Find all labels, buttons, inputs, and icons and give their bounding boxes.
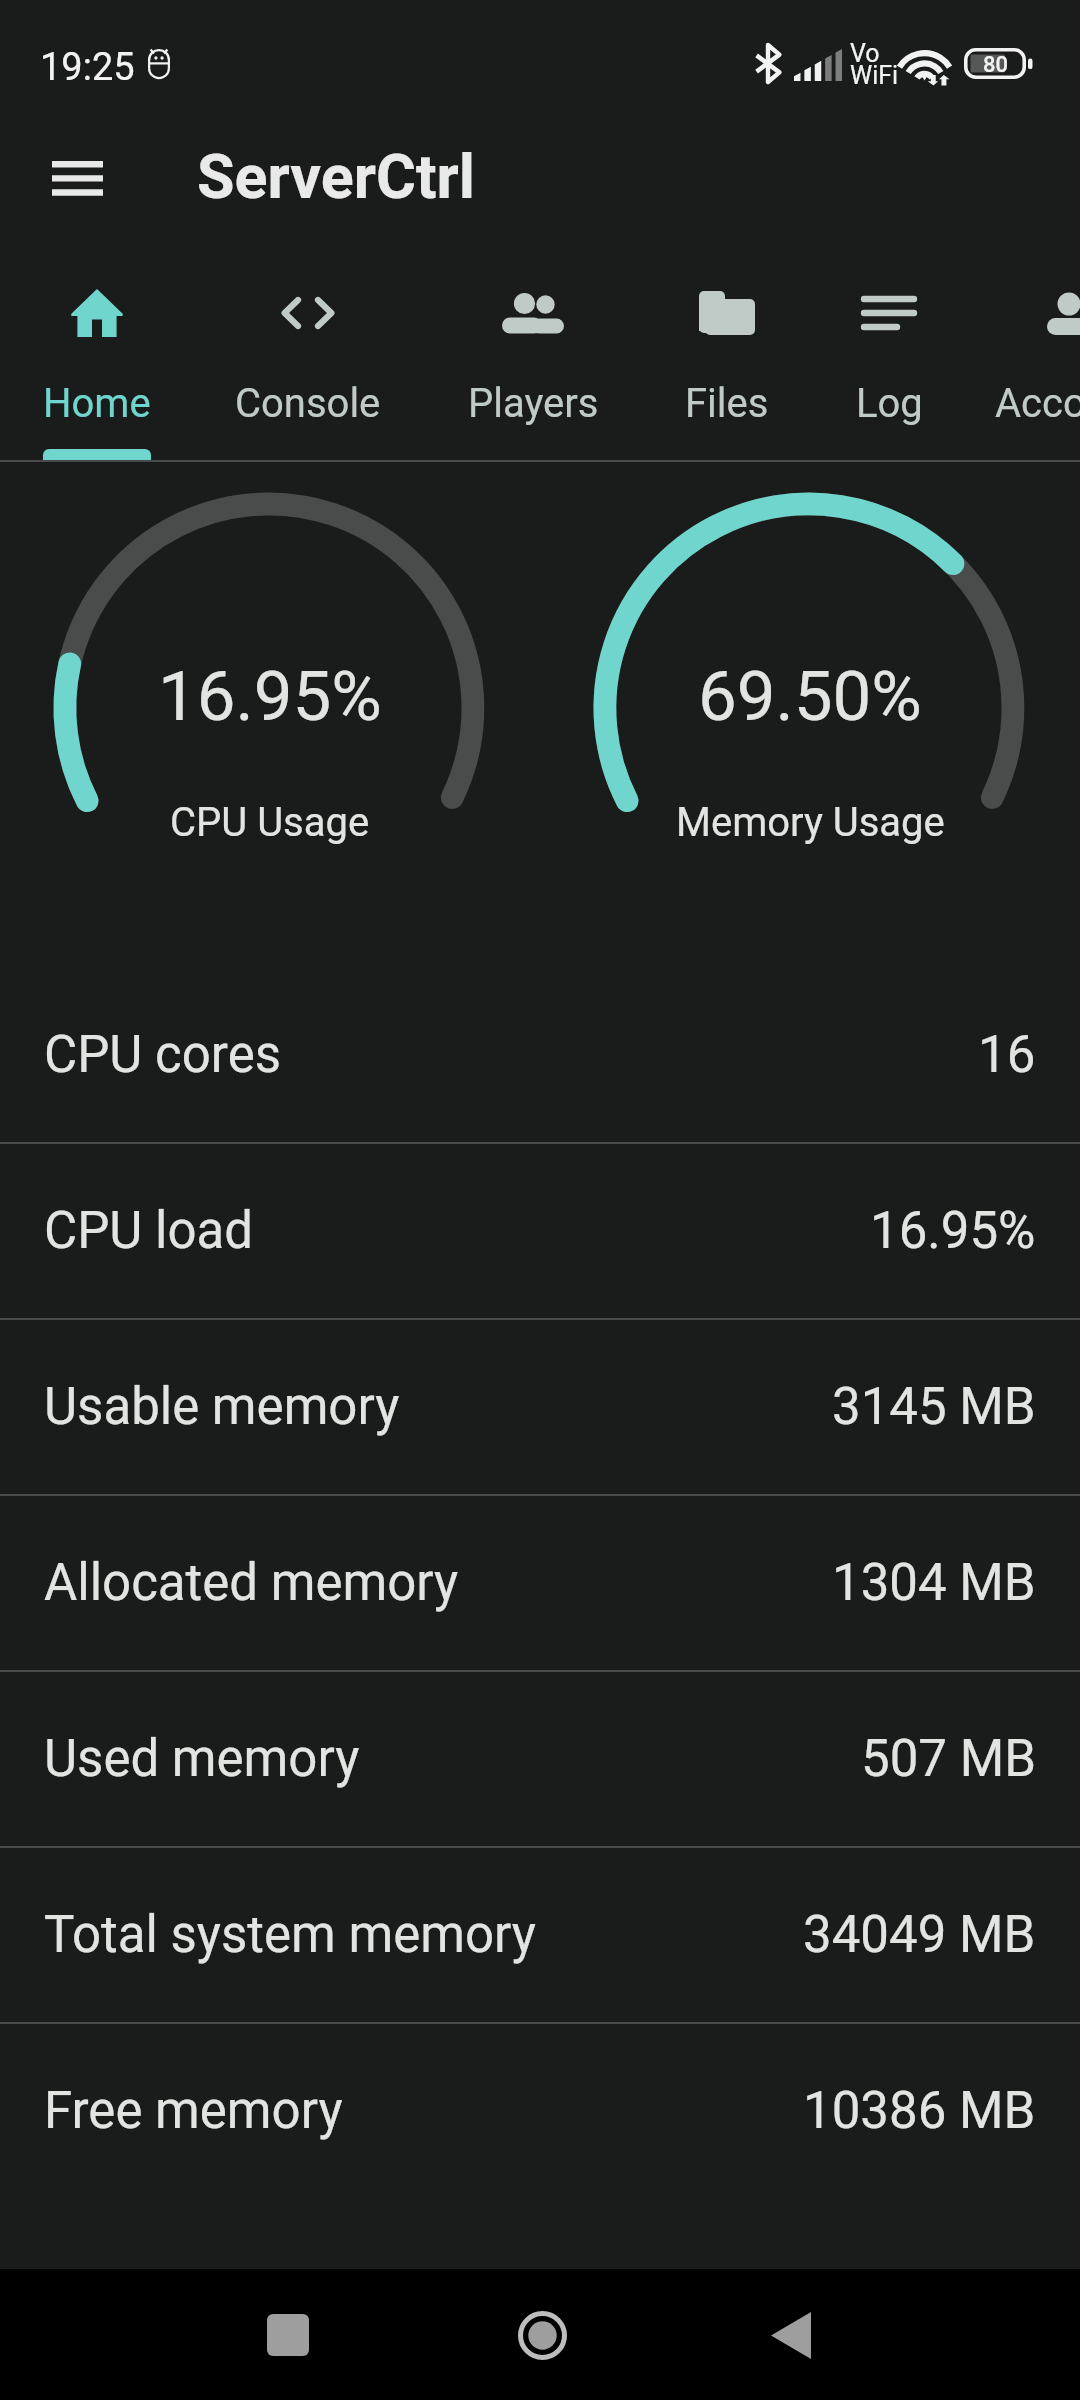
- button[interactable]: Log: [809, 252, 969, 462]
- staticText: WiFi: [850, 61, 899, 90]
- button[interactable]: Open navigation menu: [9, 119, 97, 245]
- staticText: Total system memory: [44, 1905, 536, 1965]
- staticText: 16.95%: [870, 1201, 1036, 1261]
- staticText: 69.50%: [698, 656, 922, 737]
- button[interactable]: CPU load: [0, 1144, 1080, 1318]
- button[interactable]: Used memory: [0, 1672, 1080, 1846]
- staticText: CPU load: [44, 1201, 254, 1261]
- staticText: Vo: [850, 39, 880, 68]
- button[interactable]: Account: [969, 252, 1080, 462]
- staticText: 34049 MB: [803, 1905, 1036, 1965]
- button[interactable]: Players: [422, 252, 644, 462]
- staticText: 1304 MB: [832, 1553, 1036, 1613]
- staticText: Used memory: [44, 1729, 360, 1789]
- staticText: Console: [235, 380, 381, 427]
- staticText: 10386 MB: [803, 2081, 1036, 2141]
- staticText: Files: [685, 380, 769, 427]
- staticText: Usable memory: [44, 1377, 400, 1437]
- button[interactable]: Allocated memory: [0, 1496, 1080, 1670]
- button[interactable]: Back: [751, 2295, 831, 2375]
- button[interactable]: Home: [502, 2295, 582, 2375]
- staticText: ServerCtrl: [197, 141, 476, 212]
- staticText: 16: [978, 1025, 1036, 1085]
- staticText: 3145 MB: [832, 1377, 1036, 1437]
- button[interactable]: CPU cores: [0, 968, 1080, 1142]
- button[interactable]: Home: [0, 252, 194, 462]
- button[interactable]: Total system memory: [0, 1848, 1080, 2022]
- button[interactable]: Free memory: [0, 2024, 1080, 2198]
- staticText: 19:25: [40, 45, 135, 90]
- staticText: CPU Usage: [170, 799, 370, 846]
- staticText: Allocated memory: [44, 1553, 459, 1613]
- staticText: Log: [856, 380, 923, 427]
- button[interactable]: Usable memory: [0, 1320, 1080, 1494]
- staticText: Players: [468, 380, 599, 427]
- button[interactable]: Console: [194, 252, 422, 462]
- staticText: Home: [43, 380, 151, 427]
- staticText: Account: [995, 380, 1080, 427]
- button[interactable]: Recent apps: [248, 2295, 328, 2375]
- staticText: 16.95%: [158, 656, 382, 737]
- staticText: Free memory: [44, 2081, 343, 2141]
- staticText: 507 MB: [861, 1729, 1036, 1789]
- button[interactable]: Files: [644, 252, 809, 462]
- staticText: 80: [975, 52, 1016, 78]
- staticText: Memory Usage: [676, 799, 945, 846]
- staticText: CPU cores: [44, 1025, 282, 1085]
